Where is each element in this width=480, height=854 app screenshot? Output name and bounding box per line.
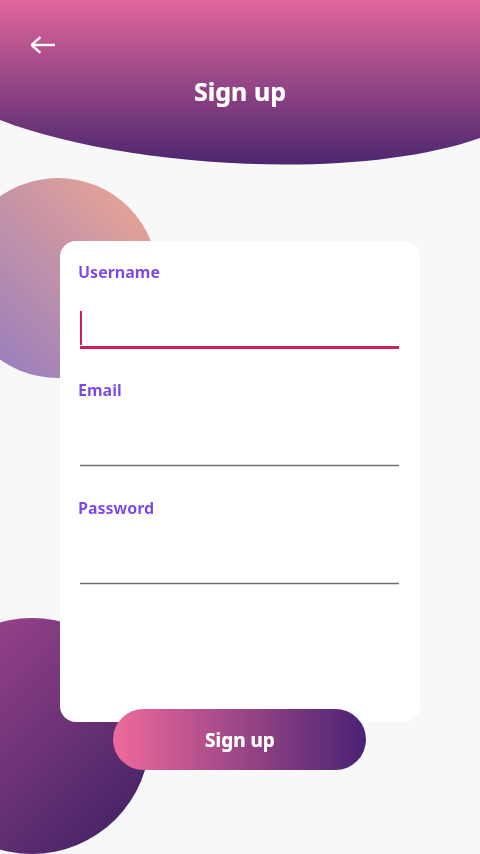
button[interactable]: Username: [60, 241, 420, 349]
button[interactable]: Password: [60, 467, 420, 585]
button[interactable]: Sign up: [113, 709, 366, 770]
button[interactable]: Email: [60, 349, 420, 467]
staticText: Email: [78, 379, 122, 401]
staticText: Sign up: [205, 727, 275, 753]
staticText: Password: [78, 497, 155, 519]
staticText: Sign up: [0, 74, 480, 108]
button[interactable]: Back: [20, 22, 66, 68]
staticText: Username: [78, 261, 160, 283]
